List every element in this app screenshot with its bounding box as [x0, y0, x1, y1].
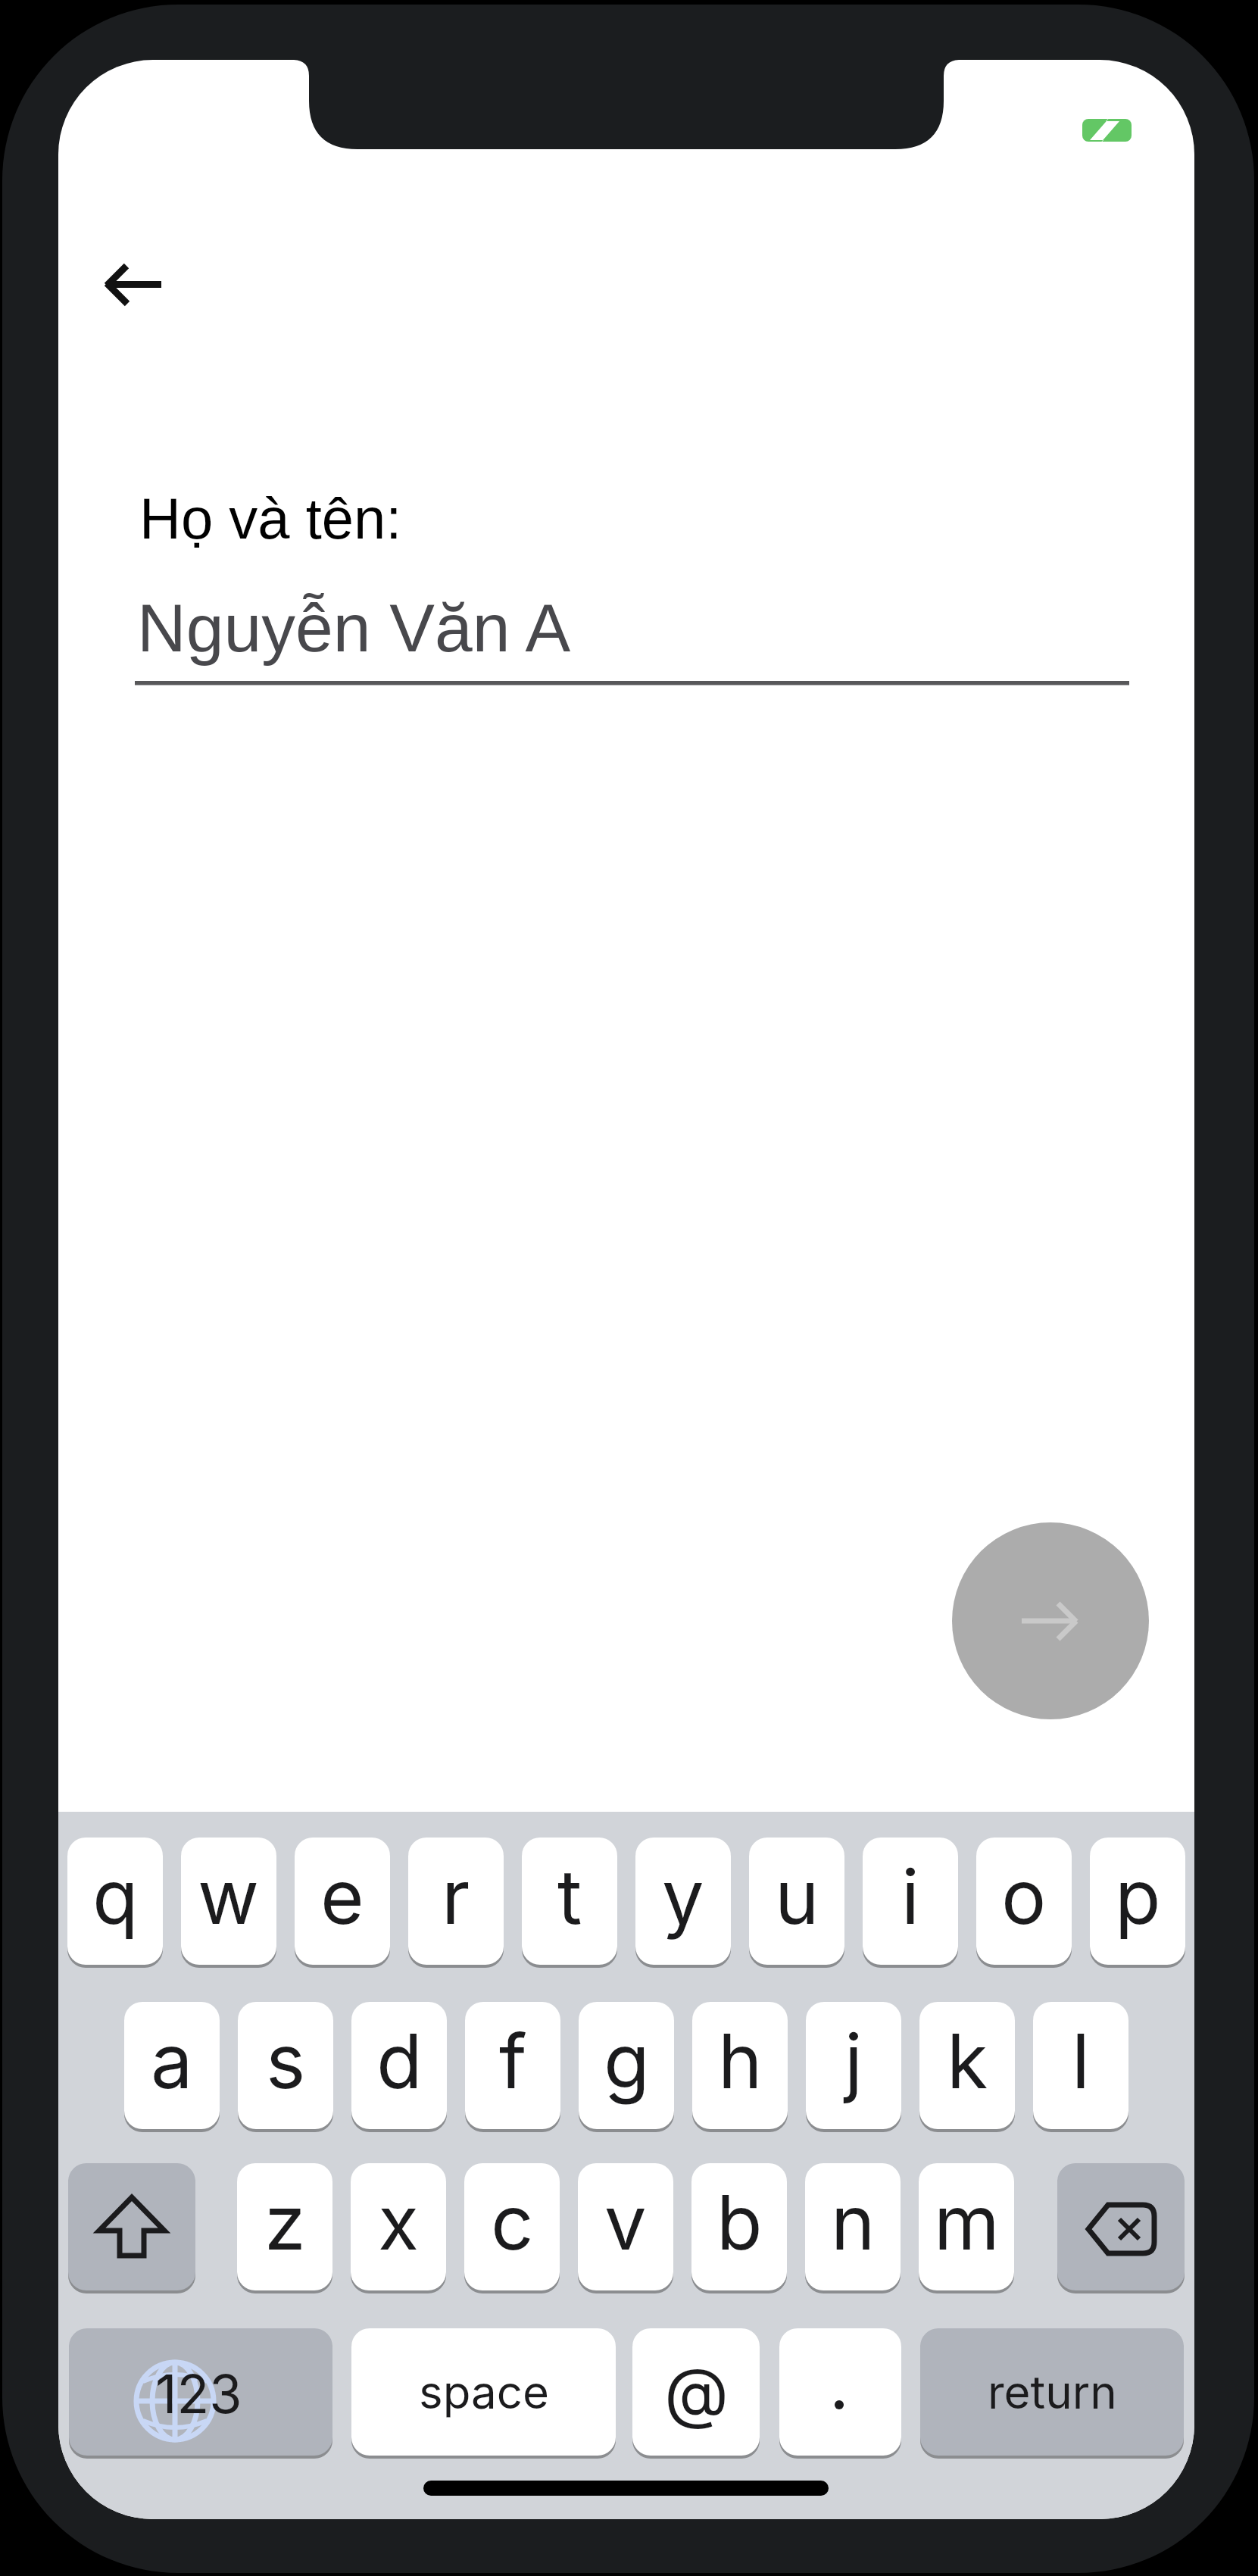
staticText: space — [419, 2365, 549, 2420]
button[interactable]: space — [351, 2328, 616, 2456]
button[interactable]: z — [237, 2163, 332, 2290]
button[interactable]: u — [749, 1838, 844, 1965]
staticText: j — [844, 2016, 863, 2106]
staticText: x — [378, 2177, 420, 2268]
button[interactable]: v — [578, 2163, 673, 2290]
button[interactable]: 123 — [69, 2328, 332, 2456]
staticText: e — [320, 1851, 364, 1942]
staticText: h — [718, 2016, 763, 2106]
staticText: l — [1072, 2016, 1090, 2106]
button[interactable]: b — [691, 2163, 787, 2290]
button[interactable]: return — [920, 2328, 1184, 2456]
button[interactable] — [779, 2328, 901, 2456]
button[interactable] — [68, 2163, 195, 2290]
staticText: return — [988, 2365, 1117, 2420]
button[interactable]: i — [863, 1838, 958, 1965]
button[interactable]: p — [1090, 1838, 1185, 1965]
staticText: v — [604, 2177, 647, 2268]
staticText: w — [198, 1851, 260, 1942]
button[interactable]: o — [976, 1838, 1072, 1965]
staticText: t — [557, 1851, 582, 1942]
staticText: m — [934, 2177, 1000, 2268]
staticText: n — [831, 2177, 876, 2268]
staticText: z — [264, 2177, 306, 2268]
button[interactable]: n — [805, 2163, 901, 2290]
staticText: y — [662, 1851, 704, 1942]
button[interactable]: x — [351, 2163, 446, 2290]
button[interactable]: h — [692, 2002, 788, 2129]
button[interactable]: g — [579, 2002, 674, 2129]
staticText: g — [604, 2016, 650, 2106]
button[interactable]: m — [919, 2163, 1014, 2290]
staticText: i — [901, 1851, 919, 1942]
staticText: @ — [664, 2352, 729, 2432]
button[interactable]: c — [464, 2163, 560, 2290]
staticText: u — [775, 1851, 819, 1942]
staticText: d — [376, 2016, 423, 2106]
button[interactable]: q — [67, 1838, 163, 1965]
staticText: s — [266, 2016, 306, 2106]
staticText: Họ và tên: — [139, 486, 402, 551]
button[interactable]: k — [919, 2002, 1015, 2129]
button[interactable]: t — [522, 1838, 617, 1965]
staticText: p — [1115, 1851, 1161, 1942]
button[interactable]: f — [465, 2002, 560, 2129]
button[interactable]: r — [408, 1838, 504, 1965]
button[interactable] — [1057, 2163, 1185, 2290]
button[interactable]: e — [295, 1838, 390, 1965]
button[interactable]: d — [351, 2002, 447, 2129]
button[interactable]: y — [635, 1838, 731, 1965]
staticText: b — [716, 2177, 763, 2268]
button[interactable] — [952, 1522, 1149, 1719]
button[interactable] — [135, 582, 1129, 688]
staticText: q — [92, 1851, 139, 1942]
staticText: Nguyễn Văn A — [137, 590, 571, 666]
staticText: a — [151, 2016, 193, 2106]
staticText: 123 — [155, 2362, 242, 2426]
button[interactable] — [89, 249, 179, 325]
button[interactable]: w — [181, 1838, 276, 1965]
button[interactable]: @ — [632, 2328, 760, 2456]
button[interactable]: l — [1033, 2002, 1128, 2129]
staticText: k — [947, 2016, 988, 2106]
button[interactable]: s — [238, 2002, 333, 2129]
staticText: o — [1001, 1851, 1047, 1942]
staticText: c — [491, 2177, 534, 2268]
staticText: r — [442, 1851, 470, 1942]
button[interactable]: j — [806, 2002, 901, 2129]
staticText: f — [499, 2016, 527, 2106]
button[interactable]: a — [124, 2002, 220, 2129]
